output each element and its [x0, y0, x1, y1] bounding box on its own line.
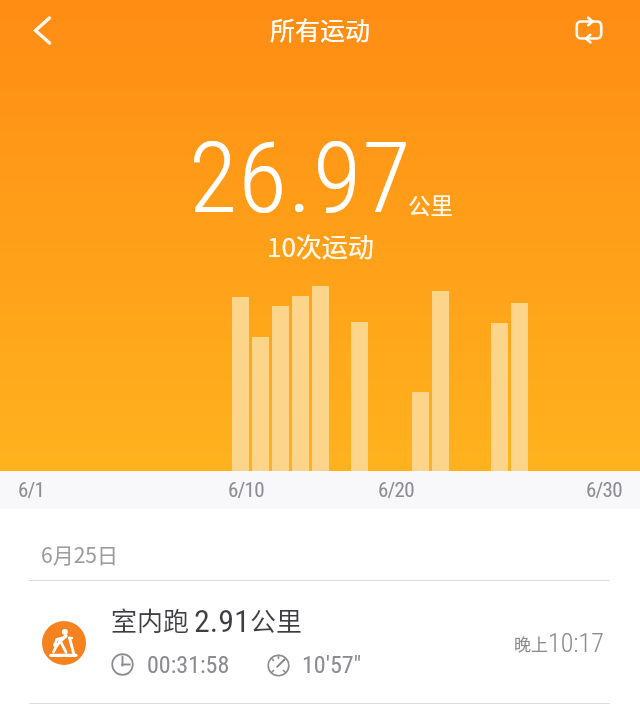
staticText: 2.91 [194, 602, 250, 640]
staticText: 6/1 [18, 478, 45, 503]
staticText: 10'57" [302, 651, 362, 679]
staticText: 公里 [408, 188, 454, 221]
staticText: 26.97 [189, 120, 413, 236]
staticText: 6月25日 [41, 539, 118, 569]
button[interactable]: Sync [565, 6, 613, 54]
staticText: 10次运动 [267, 227, 374, 265]
button[interactable]: Back [12, 2, 68, 58]
staticText: 6/10 [228, 478, 264, 503]
staticText: 公里 [250, 601, 303, 639]
staticText: 10:17 [548, 628, 604, 658]
button[interactable]: 室内跑 [0, 578, 640, 702]
staticText: 00:31:58 [147, 651, 230, 679]
staticText: 6/20 [378, 478, 414, 503]
staticText: 所有运动 [270, 11, 371, 47]
staticText: 6/30 [586, 478, 622, 503]
staticText: 室内跑 [111, 601, 190, 639]
staticText: 晚上 [514, 631, 548, 656]
